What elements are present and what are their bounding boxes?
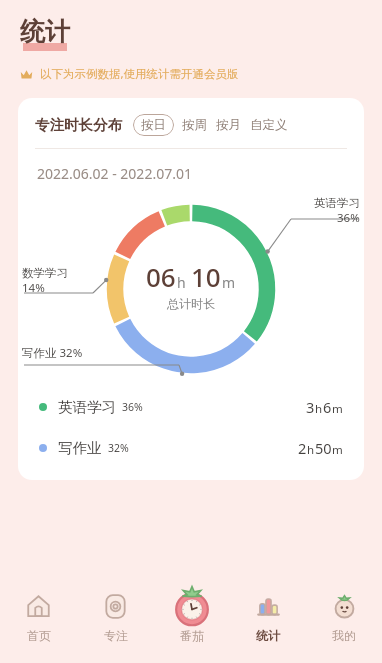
staticText: 英语学习: [58, 398, 116, 416]
staticText: 英语学习: [314, 196, 360, 210]
button[interactable]: 英语学习: [18, 397, 364, 417]
staticText: 按月: [216, 117, 241, 133]
button[interactable]: 按周: [181, 113, 208, 137]
staticText: 2022.06.02 - 2022.07.01: [37, 164, 192, 183]
staticText: h: [177, 273, 186, 292]
staticText: m: [332, 401, 343, 417]
staticText: 我的: [332, 628, 356, 643]
staticText: 写作业 32%: [22, 345, 83, 361]
staticText: 32%: [108, 441, 129, 455]
staticText: 统计: [20, 16, 70, 47]
staticText: 总计时长: [167, 296, 215, 311]
staticText: 统计: [256, 628, 280, 643]
staticText: 2: [298, 438, 307, 458]
staticText: 写作业: [58, 439, 102, 457]
button[interactable]: 专注: [77, 581, 154, 663]
button[interactable]: 按日: [133, 114, 174, 136]
staticText: 50: [315, 438, 332, 458]
staticText: 番茄: [180, 628, 204, 643]
staticText: 自定义: [250, 117, 288, 133]
staticText: 按周: [182, 117, 207, 133]
staticText: 首页: [27, 628, 51, 643]
staticText: 数学学习: [22, 266, 68, 280]
staticText: 36%: [337, 210, 360, 226]
staticText: 06: [146, 259, 176, 294]
staticText: 按日: [141, 117, 166, 133]
button[interactable]: 写作业: [18, 438, 364, 458]
staticText: h: [315, 401, 323, 417]
staticText: 以下为示例数据,使用统计需开通会员版: [40, 66, 239, 82]
staticText: 6: [323, 397, 332, 417]
button[interactable]: 统计: [230, 581, 306, 663]
staticText: 专注: [104, 628, 128, 643]
staticText: 14%: [22, 280, 45, 296]
staticText: 3: [306, 397, 315, 417]
staticText: h: [307, 442, 315, 458]
button[interactable]: 我的: [306, 581, 382, 663]
staticText: m: [332, 442, 343, 458]
button[interactable]: 自定义: [249, 113, 289, 137]
staticText: 专注时长分布: [35, 116, 122, 134]
button[interactable]: 番茄: [154, 581, 230, 663]
staticText: 36%: [122, 400, 143, 414]
staticText: m: [222, 273, 236, 292]
button[interactable]: 按月: [215, 113, 242, 137]
staticText: 10: [191, 259, 221, 294]
button[interactable]: 首页: [0, 581, 77, 663]
